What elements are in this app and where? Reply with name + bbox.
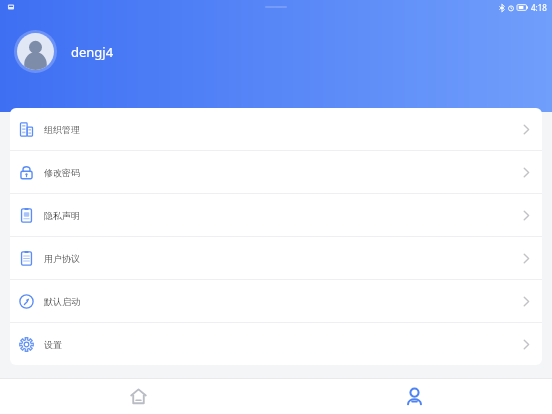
staticText: 修改密码 bbox=[44, 167, 80, 178]
staticText: 组织管理 bbox=[44, 124, 80, 135]
button[interactable]: 组织管理 bbox=[10, 108, 542, 150]
staticText: 隐私声明 bbox=[44, 210, 80, 221]
button[interactable]: Profile bbox=[276, 378, 552, 414]
button[interactable]: 隐私声明 bbox=[10, 194, 542, 236]
staticText: 默认启动 bbox=[44, 296, 80, 307]
button[interactable]: 设置 bbox=[10, 323, 542, 365]
staticText: 设置 bbox=[44, 339, 62, 350]
button[interactable]: 默认启动 bbox=[10, 280, 542, 322]
staticText: dengj4 bbox=[71, 43, 114, 61]
staticText: 4:18 bbox=[531, 2, 547, 13]
button[interactable]: Home bbox=[0, 378, 276, 414]
button[interactable]: 用户协议 bbox=[10, 237, 542, 279]
button[interactable]: dengj4 bbox=[14, 30, 114, 73]
button[interactable]: 修改密码 bbox=[10, 151, 542, 193]
staticText: 用户协议 bbox=[44, 253, 80, 264]
